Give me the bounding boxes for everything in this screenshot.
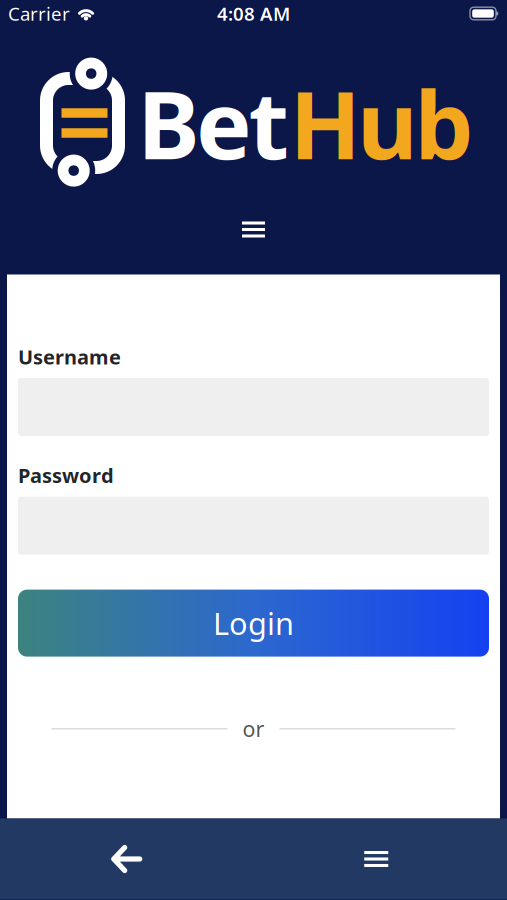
staticText: or [242, 715, 264, 743]
staticText: Bet [137, 61, 289, 185]
staticText: Password [18, 462, 114, 489]
staticText: 4:08 AM [217, 1, 290, 26]
staticText: Login [213, 603, 294, 643]
button[interactable]: Login [18, 590, 489, 657]
staticText: Carrier [8, 1, 70, 26]
button[interactable]: Back [0, 818, 253, 899]
staticText: Hub [289, 61, 473, 185]
button[interactable]: Menu [232, 215, 275, 243]
button[interactable]: Menu [253, 818, 507, 899]
staticText: Username [18, 343, 121, 370]
